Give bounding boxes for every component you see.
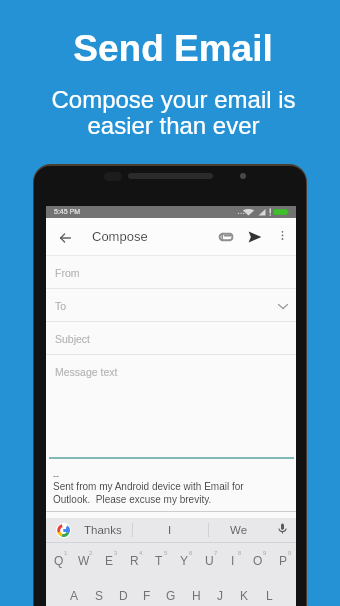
- staticText: 5:45 PM: [54, 208, 81, 216]
- staticText: 5: [164, 550, 168, 557]
- staticText: G: [166, 589, 176, 602]
- staticText: W: [78, 554, 90, 567]
- staticText: 3: [114, 550, 118, 557]
- staticText: I: [231, 554, 235, 567]
- staticText: S: [95, 589, 104, 602]
- button[interactable]: To: [46, 289, 296, 322]
- button[interactable]: W: [73, 550, 95, 571]
- staticText: 6: [189, 550, 193, 557]
- button[interactable]: Send: [241, 223, 269, 251]
- staticText: Compose: [92, 229, 148, 244]
- button[interactable]: S: [88, 585, 110, 606]
- button[interactable]: K: [233, 585, 255, 606]
- staticText: P: [279, 554, 288, 567]
- button[interactable]: G: [160, 585, 182, 606]
- button[interactable]: U: [198, 550, 220, 571]
- staticText: 0: [288, 550, 292, 557]
- staticText: T: [155, 554, 163, 567]
- staticText: Subject: [55, 333, 91, 345]
- staticText: Q: [54, 554, 64, 567]
- staticText: 9: [263, 550, 267, 557]
- staticText: I: [168, 524, 172, 537]
- staticText: O: [253, 554, 263, 567]
- staticText: Send Email: [73, 28, 273, 69]
- staticText: 1: [64, 550, 68, 557]
- button[interactable]: L: [258, 585, 280, 606]
- staticText: H: [192, 589, 201, 602]
- staticText: To: [55, 300, 67, 312]
- button[interactable]: Voice input: [277, 523, 288, 534]
- staticText: D: [119, 589, 128, 602]
- staticText: Message text: [55, 366, 118, 378]
- button[interactable]: Subject: [46, 322, 296, 355]
- staticText: 2: [89, 550, 93, 557]
- staticText: Y: [180, 554, 189, 567]
- button[interactable]: O: [247, 550, 269, 571]
- button[interactable]: R: [123, 550, 145, 571]
- staticText: Compose your email is easier than ever: [51, 86, 296, 139]
- button[interactable]: Back: [50, 223, 80, 253]
- button[interactable]: F: [136, 585, 158, 606]
- staticText: We: [230, 524, 248, 537]
- staticText: 8: [238, 550, 242, 557]
- staticText: J: [217, 589, 223, 602]
- button[interactable]: Q: [48, 550, 70, 571]
- staticText: F: [143, 589, 151, 602]
- staticText: From: [55, 267, 80, 279]
- button[interactable]: I: [222, 550, 244, 571]
- button[interactable]: From: [46, 256, 296, 289]
- staticText: U: [205, 554, 214, 567]
- button[interactable]: Y: [173, 550, 195, 571]
- button[interactable]: A: [63, 585, 85, 606]
- button[interactable]: P: [272, 550, 294, 571]
- button[interactable]: H: [185, 585, 207, 606]
- button[interactable]: J: [209, 585, 231, 606]
- button[interactable]: D: [112, 585, 134, 606]
- staticText: A: [70, 589, 79, 602]
- staticText: --: [53, 471, 59, 481]
- button[interactable]: E: [98, 550, 120, 571]
- button[interactable]: More options: [271, 224, 294, 247]
- staticText: 7: [214, 550, 218, 557]
- staticText: E: [105, 554, 114, 567]
- button[interactable]: T: [148, 550, 170, 571]
- staticText: Sent from my Android device with Email f…: [53, 481, 244, 506]
- staticText: L: [266, 589, 273, 602]
- staticText: K: [240, 589, 249, 602]
- staticText: R: [130, 554, 139, 567]
- staticText: 4: [139, 550, 143, 557]
- button[interactable]: Attach file: [212, 223, 240, 251]
- staticText: Thanks: [84, 524, 122, 537]
